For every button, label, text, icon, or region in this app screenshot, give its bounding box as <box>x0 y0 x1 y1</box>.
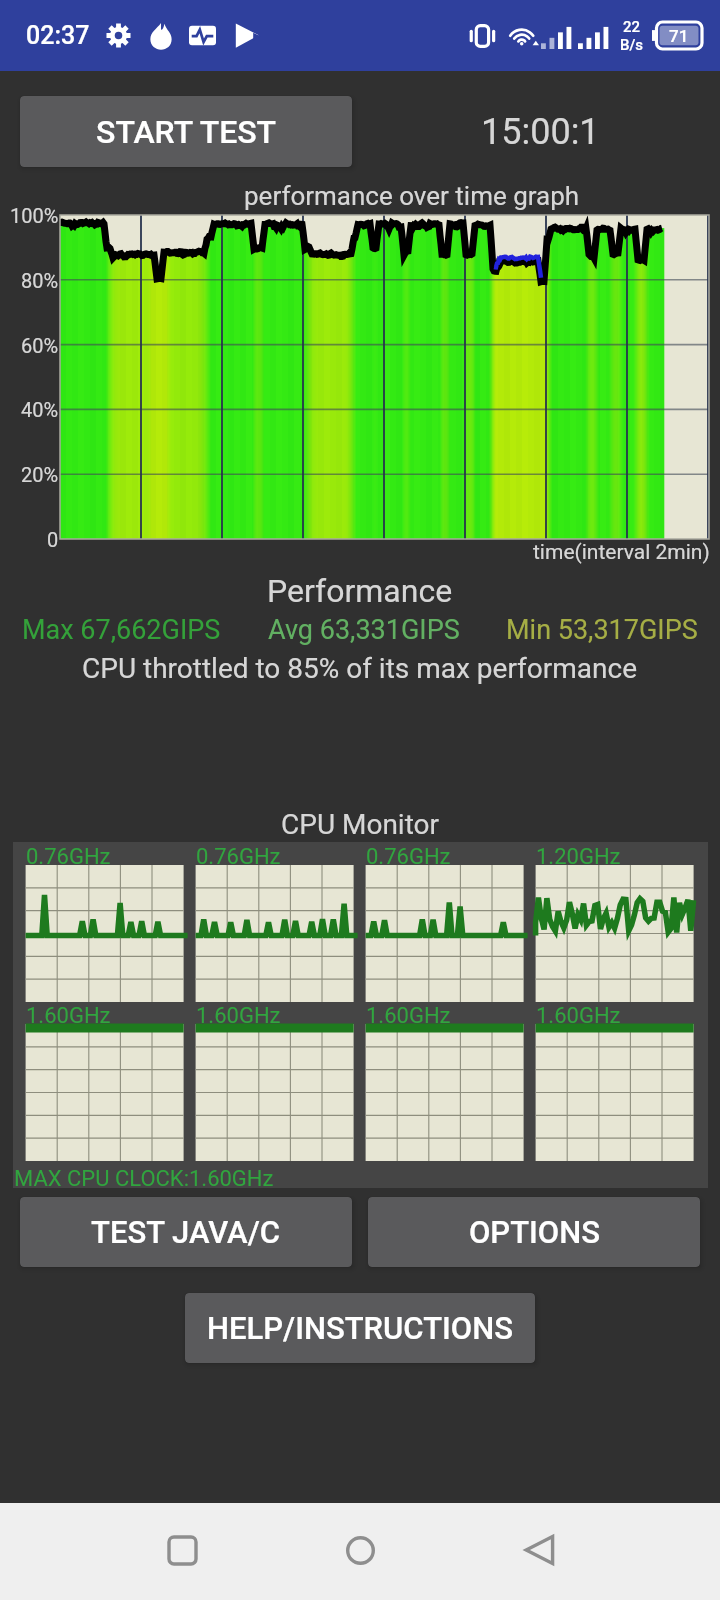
staticText: HELP/INSTRUCTIONS <box>207 1310 513 1346</box>
staticText: 1.60GHz <box>536 1003 621 1029</box>
button[interactable]: OPTIONS <box>368 1197 700 1267</box>
staticText: START TEST <box>96 113 277 151</box>
staticText: 60% <box>21 334 59 357</box>
staticText: 1.20GHz <box>536 844 621 870</box>
staticText: time(interval 2min) <box>533 540 710 565</box>
staticText: 0 <box>47 528 59 551</box>
staticText: CPU Monitor <box>281 808 440 841</box>
staticText: performance over time graph <box>244 181 580 211</box>
staticText: Min 53,317GIPS <box>506 614 698 646</box>
staticText: Max 67,662GIPS <box>22 614 221 646</box>
staticText: 0.76GHz <box>26 844 111 870</box>
staticText: 80% <box>21 269 59 292</box>
button[interactable]: Back <box>496 1506 584 1594</box>
staticText: OPTIONS <box>469 1214 600 1250</box>
staticText: B/s <box>620 36 644 54</box>
staticText: 15:00:1 <box>481 111 600 153</box>
staticText: 1.60GHz <box>196 1003 281 1029</box>
staticText: MAX CPU CLOCK:1.60GHz <box>14 1166 274 1192</box>
staticText: 02:37 <box>26 21 90 50</box>
staticText: 71 <box>669 26 689 46</box>
staticText: Performance <box>267 572 453 610</box>
button[interactable]: Recents <box>138 1506 226 1594</box>
button[interactable]: START TEST <box>20 96 352 167</box>
staticText: 1.60GHz <box>366 1003 451 1029</box>
button[interactable]: TEST JAVA/C <box>20 1197 352 1267</box>
staticText: Avg 63,331GIPS <box>268 614 460 646</box>
staticText: 100% <box>10 204 59 227</box>
staticText: 22 <box>623 18 641 36</box>
staticText: 20% <box>21 463 59 486</box>
button[interactable]: HELP/INSTRUCTIONS <box>185 1293 535 1363</box>
staticText: TEST JAVA/C <box>91 1214 281 1250</box>
staticText: CPU throttled to 85% of its max performa… <box>82 652 638 685</box>
button[interactable]: Home <box>316 1506 404 1594</box>
staticText: 40% <box>21 398 59 421</box>
staticText: 0.76GHz <box>196 844 281 870</box>
staticText: 0.76GHz <box>366 844 451 870</box>
staticText: 1.60GHz <box>26 1003 111 1029</box>
